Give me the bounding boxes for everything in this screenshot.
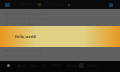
button[interactable]: Home <box>7 64 10 67</box>
staticText: Problems <box>67 64 82 68</box>
staticText: Hello, world! <box>15 34 37 39</box>
button[interactable]: TODO <box>52 64 62 68</box>
button[interactable]: Profiler <box>87 64 98 68</box>
button[interactable]: Build <box>18 64 26 68</box>
staticText: Build <box>18 64 26 68</box>
button[interactable]: App icon <box>5 3 10 7</box>
staticText: File Edit View <box>21 2 43 6</box>
button[interactable]: Git <box>42 64 47 68</box>
button[interactable]: Profile <box>109 3 113 7</box>
staticText: Git <box>42 64 47 68</box>
button[interactable]: Problems <box>67 64 82 68</box>
button[interactable]: Run <box>31 64 37 68</box>
staticText: TODO <box>52 64 62 68</box>
staticText: Profiler <box>87 64 98 68</box>
staticText: Run <box>31 64 37 68</box>
